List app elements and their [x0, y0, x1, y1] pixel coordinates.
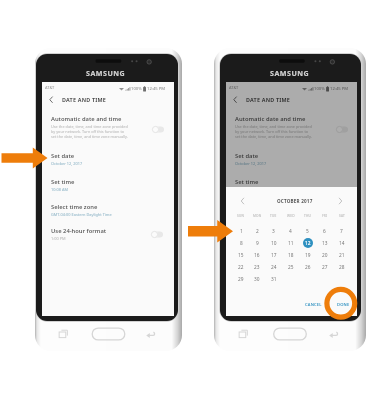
- staticText: 6: [323, 228, 326, 235]
- button[interactable]: 18: [282, 249, 299, 261]
- staticText: 12:45 PM: [147, 86, 166, 92]
- button[interactable]: Toggle: [151, 231, 163, 238]
- staticText: FRI: [322, 214, 328, 218]
- button[interactable]: 29: [233, 273, 249, 285]
- button[interactable]: 23: [249, 261, 265, 273]
- staticText: 23: [254, 264, 260, 271]
- button[interactable]: Back: [226, 93, 357, 107]
- staticText: SAT: [339, 214, 345, 218]
- staticText: GMT-04:00 Eastern Daylight Time: [51, 212, 112, 217]
- staticText: Automatic date and time: [51, 115, 122, 123]
- button[interactable]: Select time zone: [226, 201, 357, 222]
- staticText: 16: [254, 252, 260, 259]
- button[interactable]: 7: [333, 225, 350, 237]
- button[interactable]: 5: [299, 225, 316, 237]
- staticText: October 12, 2017: [51, 161, 83, 166]
- button[interactable]: 14: [333, 237, 350, 249]
- button[interactable]: Automatic date and time: [42, 112, 174, 138]
- button[interactable]: 3: [265, 225, 282, 237]
- staticText: 20: [322, 252, 328, 259]
- button[interactable]: 24: [265, 261, 282, 273]
- button[interactable]: Use 24-hour format: [42, 225, 174, 247]
- button[interactable]: 11: [282, 237, 299, 249]
- staticText: 18: [288, 252, 294, 259]
- staticText: Set date: [51, 152, 75, 160]
- staticText: 8: [240, 240, 243, 247]
- staticText: 26: [305, 264, 311, 271]
- button[interactable]: CANCEL: [302, 299, 325, 311]
- button[interactable]: 28: [333, 261, 350, 273]
- button[interactable]: 2: [249, 225, 265, 237]
- button[interactable]: Back: [332, 329, 344, 339]
- staticText: DATE AND TIME: [62, 96, 107, 103]
- staticText: THU: [304, 214, 312, 218]
- other: Back: [231, 95, 240, 104]
- button[interactable]: 15: [233, 249, 249, 261]
- staticText: 17: [271, 252, 277, 259]
- staticText: AT&T: [229, 85, 239, 90]
- button[interactable]: Home: [92, 328, 125, 340]
- button[interactable]: Recent apps: [53, 329, 65, 339]
- staticText: 10:08 AM: [51, 187, 68, 192]
- button[interactable]: 27: [316, 261, 333, 273]
- button[interactable]: 21: [333, 249, 350, 261]
- staticText: Use the date, time, and time zone provid…: [51, 124, 128, 139]
- staticText: 100%: [131, 86, 142, 92]
- button[interactable]: 9: [249, 237, 265, 249]
- button[interactable]: 31: [265, 273, 282, 285]
- button[interactable]: Recent apps: [232, 329, 244, 339]
- button[interactable]: 10: [265, 237, 282, 249]
- button[interactable]: 25: [282, 261, 299, 273]
- staticText: SAMSUNG: [86, 68, 126, 78]
- staticText: 11: [288, 240, 294, 247]
- staticText: 1:00 PM: [51, 236, 66, 241]
- staticText: October 12, 2017: [235, 161, 267, 166]
- button[interactable]: 4: [282, 225, 299, 237]
- button[interactable]: Back: [148, 329, 160, 339]
- button[interactable]: 13: [316, 237, 333, 249]
- button[interactable]: Home: [274, 328, 307, 340]
- button[interactable]: Use 24-hour format: [226, 225, 357, 247]
- button[interactable]: 30: [249, 273, 265, 285]
- staticText: 14: [339, 240, 345, 247]
- staticText: SAMSUNG: [270, 68, 310, 78]
- button[interactable]: DONE: [334, 299, 353, 311]
- button[interactable]: Previous month: [238, 196, 248, 206]
- staticText: Select time zone: [51, 203, 98, 211]
- button[interactable]: 17: [265, 249, 282, 261]
- button[interactable]: Select time zone: [42, 201, 174, 222]
- button[interactable]: 19: [299, 249, 316, 261]
- button[interactable]: Set time: [42, 176, 174, 197]
- button[interactable]: 20: [316, 249, 333, 261]
- button[interactable]: 1: [233, 225, 249, 237]
- staticText: Set date: [235, 152, 259, 160]
- button[interactable]: Toggle: [152, 126, 164, 133]
- staticText: DATE AND TIME: [246, 96, 291, 103]
- staticText: Set time: [51, 178, 75, 186]
- button[interactable]: Toggle: [335, 231, 347, 238]
- button[interactable]: 6: [316, 225, 333, 237]
- button[interactable]: 26: [299, 261, 316, 273]
- button[interactable]: Automatic date and time: [226, 112, 357, 138]
- button[interactable]: 12: [299, 237, 316, 249]
- button[interactable]: Set time: [226, 176, 357, 197]
- staticText: 1: [240, 228, 243, 235]
- button[interactable]: 8: [233, 237, 249, 249]
- button[interactable]: Set date: [226, 150, 357, 171]
- button[interactable]: Toggle: [336, 126, 348, 133]
- button[interactable]: 22: [233, 261, 249, 273]
- button[interactable]: Back: [42, 93, 174, 107]
- staticText: MON: [253, 214, 262, 218]
- staticText: Use 24-hour format: [235, 227, 291, 235]
- staticText: Automatic date and time: [235, 115, 306, 123]
- button[interactable]: 16: [249, 249, 265, 261]
- button[interactable]: Set date: [42, 150, 174, 171]
- button[interactable]: Next month: [335, 196, 345, 206]
- staticText: 31: [271, 276, 277, 283]
- staticText: 12: [305, 240, 311, 247]
